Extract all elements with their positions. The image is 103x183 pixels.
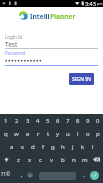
button[interactable]: Backspace [90, 153, 103, 166]
staticText: pm [97, 1, 103, 6]
staticText: o [86, 130, 90, 138]
button[interactable]: j [68, 140, 78, 153]
button[interactable]: 3 [22, 114, 33, 127]
button[interactable]: f [38, 140, 48, 153]
button[interactable]: 9 [83, 114, 93, 127]
staticText: h [61, 143, 65, 151]
staticText: b [61, 156, 65, 164]
staticText: c [39, 156, 42, 164]
button[interactable]: b [57, 153, 68, 166]
staticText: . [83, 171, 85, 179]
staticText: Planner [50, 12, 76, 21]
button[interactable]: m [79, 153, 90, 166]
staticText: w [14, 130, 19, 138]
staticText: f [42, 143, 45, 151]
staticText: l [92, 143, 94, 151]
staticText: m [82, 156, 88, 164]
staticText: v [50, 156, 54, 164]
button[interactable]: w [11, 127, 22, 140]
staticText: u [66, 130, 70, 138]
button[interactable]: t [43, 127, 53, 140]
staticText: 1 [4, 117, 8, 125]
button[interactable]: o [83, 127, 93, 140]
staticText: 2 [15, 117, 19, 125]
staticText: a [10, 143, 14, 151]
staticText: k [81, 143, 85, 151]
staticText: i [77, 130, 79, 138]
staticText: p [96, 130, 100, 138]
button[interactable]: u [63, 127, 73, 140]
staticText: t [47, 130, 50, 138]
staticText: SIGN IN [72, 76, 91, 83]
staticText: 6 [56, 117, 60, 125]
button[interactable]: k [78, 140, 88, 153]
button[interactable]: 0 [93, 114, 103, 127]
button[interactable]: , [16, 168, 28, 181]
staticText: g [51, 143, 55, 151]
button[interactable]: 1 [0, 114, 11, 127]
staticText: 3:43 [85, 0, 96, 7]
button[interactable]: i [73, 127, 83, 140]
staticText: 7 [66, 117, 70, 125]
staticText: Password [5, 50, 26, 56]
staticText: q [4, 130, 8, 138]
staticText: x [28, 156, 32, 164]
button[interactable]: d [28, 140, 38, 153]
button[interactable]: x [24, 153, 35, 166]
button[interactable]: e [22, 127, 33, 140]
button[interactable]: Emoji [25, 168, 35, 181]
button[interactable]: SIGN IN [69, 73, 94, 85]
staticText: Test [5, 40, 18, 49]
button[interactable]: 7 [63, 114, 73, 127]
staticText: ?1© [1, 171, 11, 178]
button[interactable]: Enter [90, 171, 99, 180]
button[interactable]: 2 [11, 114, 22, 127]
staticText: d [31, 143, 35, 151]
button[interactable]: z [13, 153, 24, 166]
staticText: n [72, 156, 76, 164]
staticText: j [72, 143, 74, 151]
button[interactable]: h [58, 140, 68, 153]
staticText: , [21, 171, 23, 179]
staticText: Login Id [5, 34, 23, 40]
staticText: 0 [96, 117, 100, 125]
staticText: 9 [86, 117, 90, 125]
button[interactable]: c [35, 153, 46, 166]
button[interactable]: y [53, 127, 63, 140]
staticText: y [56, 130, 60, 138]
staticText: e [26, 130, 30, 138]
button[interactable]: s [17, 140, 28, 153]
button[interactable]: . [78, 168, 90, 181]
button[interactable]: a [6, 140, 17, 153]
button[interactable]: 5 [43, 114, 53, 127]
button[interactable]: n [68, 153, 79, 166]
staticText: 8 [76, 117, 80, 125]
button[interactable]: l [88, 140, 98, 153]
button[interactable]: ?1© [0, 168, 11, 181]
staticText: z [17, 156, 20, 164]
button[interactable]: g [48, 140, 58, 153]
button[interactable]: r [33, 127, 43, 140]
staticText: 4 [36, 117, 40, 125]
button[interactable]: v [46, 153, 57, 166]
button[interactable]: Shift [0, 153, 13, 166]
staticText: Intelli [30, 12, 50, 21]
button[interactable]: q [0, 127, 11, 140]
staticText: s [21, 143, 24, 151]
button[interactable]: 6 [53, 114, 63, 127]
button[interactable]: 8 [73, 114, 83, 127]
button[interactable]: 4 [33, 114, 43, 127]
staticText: r [37, 130, 40, 138]
staticText: 3 [26, 117, 30, 125]
staticText: 5 [46, 117, 50, 125]
button[interactable]: p [93, 127, 103, 140]
